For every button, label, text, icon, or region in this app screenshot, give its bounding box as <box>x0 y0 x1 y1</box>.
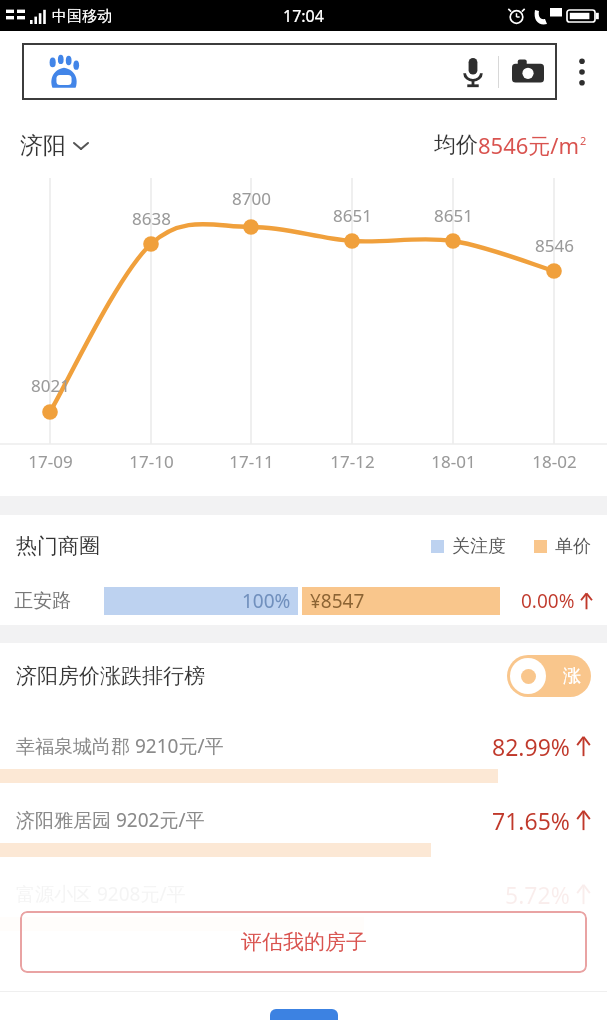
button[interactable]: 富源小区 9208元/平 <box>16 857 591 931</box>
staticText: 82.99% <box>492 731 570 762</box>
staticText: 17-10 <box>129 450 174 473</box>
staticText: 8546 <box>535 234 574 257</box>
staticText: 18-02 <box>532 450 577 473</box>
staticText: 2 <box>580 133 587 148</box>
staticText: 涨 <box>563 665 581 688</box>
staticText: 济阳雅居园 9202元/平 <box>16 807 205 833</box>
button[interactable]: 济阳雅居园 9202元/平 <box>16 783 591 857</box>
staticText: 幸福泉城尚郡 9210元/平 <box>16 733 224 759</box>
staticText: 热门商圈 <box>16 533 100 559</box>
staticText: 17-12 <box>330 450 375 473</box>
staticText: 均价 <box>434 131 478 159</box>
button[interactable]: Primary action <box>270 1009 338 1020</box>
staticText: ¥8547 <box>310 588 365 614</box>
staticText: 100% <box>242 588 291 614</box>
staticText: 17-11 <box>229 450 274 473</box>
button[interactable]: Image search <box>499 44 557 99</box>
staticText: 8651 <box>333 204 372 227</box>
button[interactable]: Voice search <box>22 43 557 100</box>
staticText: 17:04 <box>283 5 324 27</box>
button[interactable]: 评估我的房子 <box>20 911 587 973</box>
staticText: 8700 <box>232 187 271 210</box>
staticText: 8021 <box>31 374 70 397</box>
staticText: 评估我的房子 <box>241 929 367 955</box>
staticText: 0.00% <box>521 588 575 614</box>
staticText: 中国移动 <box>52 7 112 26</box>
staticText: 济阳 <box>20 131 66 160</box>
button[interactable]: 济阳 <box>20 131 89 160</box>
button[interactable]: 正安路 <box>14 577 593 625</box>
staticText: 8651 <box>434 204 473 227</box>
staticText: 18-01 <box>431 450 476 473</box>
staticText: 正安路 <box>14 589 104 613</box>
staticText: 8638 <box>132 207 171 230</box>
staticText: 71.65% <box>492 805 570 836</box>
button[interactable]: More options <box>557 43 607 100</box>
button[interactable]: Toggle rise or fall <box>507 655 591 697</box>
button[interactable]: 幸福泉城尚郡 9210元/平 <box>16 709 591 783</box>
staticText: 济阳房价涨跌排行榜 <box>16 663 205 689</box>
staticText: 富源小区 9208元/平 <box>16 881 186 907</box>
staticText: 17-09 <box>28 450 73 473</box>
staticText: 关注度 <box>452 535 506 558</box>
staticText: 5.72% <box>505 879 570 910</box>
button[interactable]: Voice search <box>448 44 498 99</box>
staticText: 8546元/m <box>478 130 580 160</box>
staticText: 单价 <box>555 535 591 558</box>
